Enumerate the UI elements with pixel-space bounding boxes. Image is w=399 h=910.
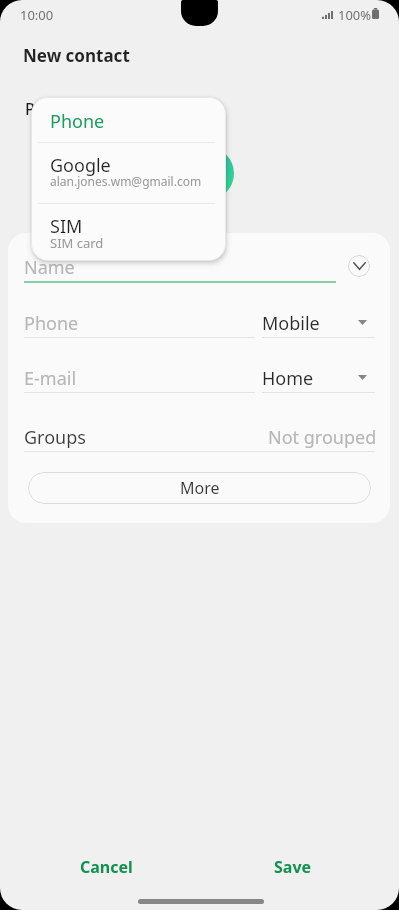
staticText: alan.jones.wm@gmail.com (50, 173, 202, 189)
staticText: 100% (338, 6, 372, 24)
staticText: SIM card (50, 234, 104, 252)
staticText: Phone (25, 98, 74, 120)
button[interactable]: Add contact photo (181, 147, 234, 200)
button[interactable]: Phone (24, 311, 375, 337)
button[interactable]: E-mail (24, 366, 375, 392)
button[interactable]: More (28, 472, 371, 504)
staticText: Cancel (80, 856, 133, 878)
staticText: Home (262, 366, 314, 391)
staticText: Google (50, 153, 111, 178)
staticText: SIM (50, 214, 83, 239)
button[interactable]: Name (24, 255, 336, 285)
staticText: Name (24, 255, 75, 280)
button[interactable]: Phone (31, 97, 226, 142)
staticText: New contact (23, 44, 130, 67)
staticText: Not grouped (268, 425, 377, 450)
button[interactable]: Groups (24, 425, 375, 451)
button[interactable]: Google (31, 143, 226, 203)
button[interactable]: Cancel (56, 851, 156, 883)
staticText: E-mail (24, 366, 77, 391)
button[interactable]: Save (243, 851, 343, 883)
staticText: Groups (24, 425, 86, 450)
staticText: Phone (24, 311, 79, 336)
staticText: 10:00 (20, 6, 54, 24)
button[interactable]: Phone (25, 98, 85, 120)
button[interactable]: SIM (31, 204, 226, 261)
staticText: More (180, 477, 220, 499)
staticText: Mobile (262, 311, 320, 336)
staticText: Phone (50, 109, 105, 134)
staticText: Save (274, 856, 312, 878)
button[interactable]: Expand name fields (348, 255, 370, 277)
